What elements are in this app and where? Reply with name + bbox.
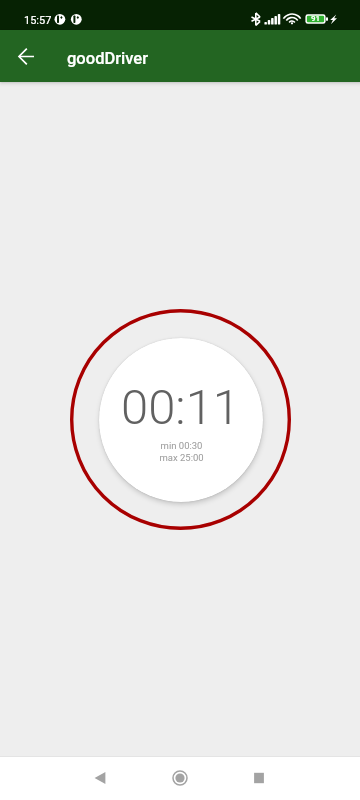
staticText: 15:57 (24, 14, 52, 27)
button[interactable]: Home (156, 756, 204, 800)
staticText: 91 (311, 14, 321, 23)
staticText: min 00:30 max 25:00 (159, 440, 204, 463)
button[interactable]: Back (8, 38, 44, 74)
button[interactable]: Back (76, 756, 124, 800)
staticText: 00:11 (121, 379, 241, 436)
button[interactable]: Recent apps (235, 756, 283, 800)
staticText: goodDriver (67, 49, 148, 68)
